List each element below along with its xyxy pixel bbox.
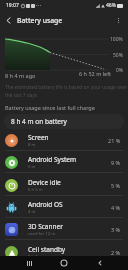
staticText: 8 h 4 m on battery — [11, 117, 67, 126]
button[interactable]: Device idle — [0, 174, 128, 196]
staticText: 19:07 — [6, 2, 19, 9]
staticText: Battery usage since last full charge — [5, 104, 95, 111]
staticText: Cell standby — [28, 245, 66, 254]
staticText: 3D Scanner — [28, 222, 63, 231]
button[interactable]: 3D Scanner — [0, 218, 128, 240]
staticText: The estimated battery life is based on y… — [5, 84, 128, 98]
button[interactable]: Android System — [0, 151, 128, 173]
button[interactable]: Screen — [0, 129, 128, 151]
button[interactable]: 8 h 4 m on battery — [4, 114, 124, 129]
staticText: 9 % — [111, 159, 121, 166]
staticText: 4 m — [28, 209, 36, 215]
button[interactable]: More options — [112, 14, 125, 27]
button[interactable]: Recent apps — [22, 256, 36, 270]
staticText: Device idle — [28, 178, 61, 187]
staticText: 4 % — [111, 204, 121, 211]
staticText: 50% — [113, 52, 123, 59]
button[interactable]: Cell standby — [0, 241, 128, 263]
staticText: 46% — [106, 2, 116, 9]
staticText: 8 h 4 m ago — [5, 72, 36, 79]
staticText: Android OS — [28, 200, 63, 209]
button[interactable]: Back — [2, 14, 15, 27]
staticText: 2 % — [111, 249, 121, 256]
staticText: 100% — [110, 36, 123, 43]
staticText: used for 12 m — [28, 231, 56, 237]
staticText: 6 h 5 m — [28, 187, 43, 193]
button[interactable]: Android OS — [0, 196, 128, 218]
button[interactable]: Home — [57, 256, 71, 270]
staticText: Battery usage — [17, 16, 63, 25]
staticText: 8 h 4 m — [28, 254, 43, 260]
staticText: Screen — [28, 133, 49, 142]
staticText: 6 h 52 m left — [79, 70, 112, 77]
button[interactable]: Back — [93, 256, 107, 270]
staticText: 8 m — [28, 142, 36, 148]
staticText: 21 % — [108, 137, 121, 144]
staticText: 5 % — [111, 182, 121, 189]
staticText: 3 % — [111, 226, 121, 233]
staticText: 0% — [116, 67, 124, 74]
staticText: 5 m — [28, 164, 36, 170]
staticText: Android System — [28, 155, 77, 164]
